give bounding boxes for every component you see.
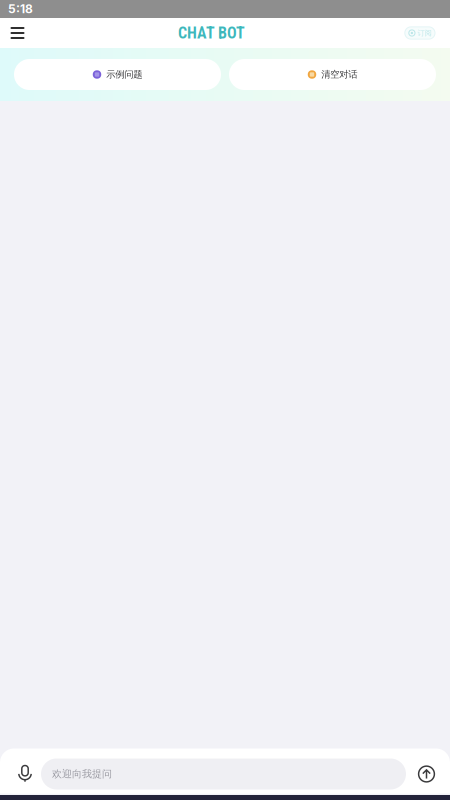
- staticText: 5:18: [8, 2, 33, 16]
- staticText: 清空对话: [321, 69, 357, 80]
- button[interactable]: Voice input: [9, 751, 41, 796]
- button[interactable]: Send: [406, 751, 447, 796]
- staticText: 欢迎向我提问: [52, 768, 112, 780]
- button[interactable]: 清空对话: [229, 59, 436, 90]
- staticText: 订阅: [417, 28, 431, 38]
- button[interactable]: Menu: [2, 18, 33, 48]
- button[interactable]: Subscribe: [405, 18, 435, 48]
- staticText: 示例问题: [106, 69, 142, 80]
- staticText: CHAT BOT: [178, 24, 245, 42]
- button[interactable]: 示例问题: [14, 59, 221, 90]
